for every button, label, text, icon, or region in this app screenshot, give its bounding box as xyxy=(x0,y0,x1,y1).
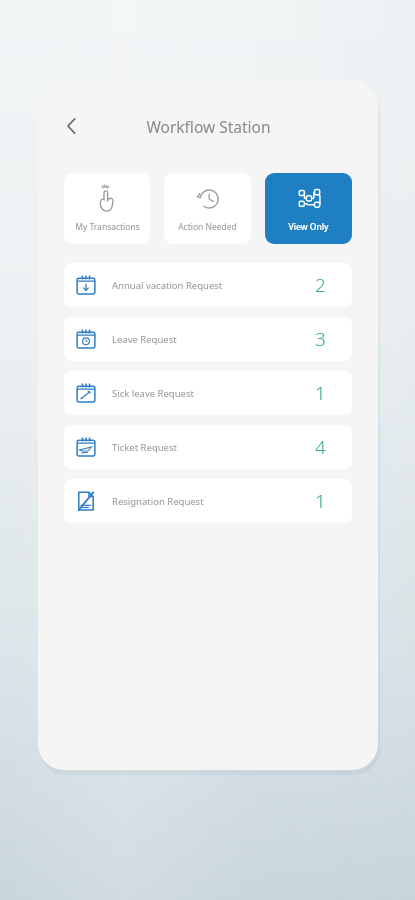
button[interactable]: Resignation Request xyxy=(64,479,352,523)
button[interactable]: Ticket Request xyxy=(64,425,352,469)
button[interactable]: Back xyxy=(54,108,90,144)
staticText: Workflow Station xyxy=(146,116,271,137)
staticText: Ticket Request xyxy=(112,441,315,454)
staticText: 1 xyxy=(315,380,326,406)
button[interactable]: Sick leave Request xyxy=(64,371,352,415)
button[interactable]: My Transactions xyxy=(64,173,150,244)
staticText: Resignation Request xyxy=(112,495,315,508)
staticText: 2 xyxy=(315,272,326,298)
staticText: 3 xyxy=(315,326,326,352)
staticText: Action Needed xyxy=(178,221,237,233)
staticText: View Only xyxy=(288,221,329,233)
staticText: Sick leave Request xyxy=(112,387,315,400)
button[interactable]: Action Needed xyxy=(164,173,251,244)
staticText: Annual vacation Request xyxy=(112,279,315,292)
staticText: 1 xyxy=(315,488,326,514)
staticText: My Transactions xyxy=(75,221,140,233)
staticText: 4 xyxy=(315,434,326,460)
button[interactable]: Annual vacation Request xyxy=(64,263,352,307)
staticText: Leave Request xyxy=(112,333,315,346)
button[interactable]: View Only xyxy=(265,173,352,244)
button[interactable]: Leave Request xyxy=(64,317,352,361)
